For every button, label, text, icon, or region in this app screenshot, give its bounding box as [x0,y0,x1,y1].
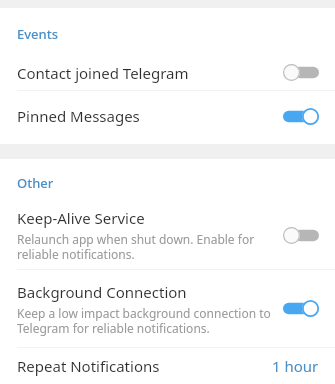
staticText: Keep a low impact background connection … [17,305,271,336]
staticText: Repeat Notifications [17,356,160,376]
button[interactable]: Keep-Alive Service [0,201,335,269]
staticText: Background Connection [17,282,187,302]
button[interactable]: Pinned Messages [0,91,335,141]
button[interactable]: Repeat Notifications [0,348,335,384]
staticText: Contact joined Telegram [17,63,189,83]
staticText: Events [17,25,59,43]
button[interactable]: Background Connection [0,270,335,347]
staticText: 1 hour [272,356,319,376]
staticText: Keep-Alive Service [17,208,145,228]
staticText: Other [17,174,54,192]
button[interactable]: Contact joined Telegram [0,55,335,90]
staticText: Relaunch app when shut down. Enable for … [17,231,255,262]
staticText: Pinned Messages [17,106,140,126]
